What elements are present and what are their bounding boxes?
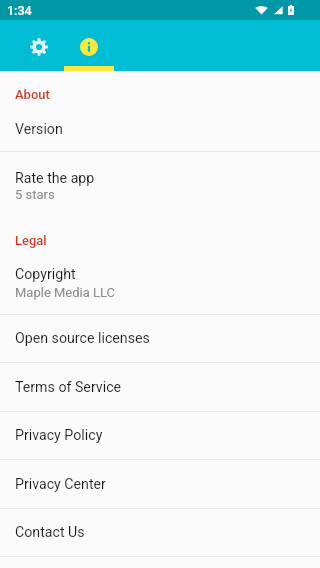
button[interactable]: Info: [64, 20, 114, 71]
button[interactable]: Open source licenses: [0, 315, 320, 362]
button[interactable]: Privacy Center: [0, 460, 320, 508]
staticText: Version: [15, 121, 63, 138]
button[interactable]: Terms of Service: [0, 363, 320, 411]
button[interactable]: Privacy Policy: [0, 412, 320, 459]
staticText: About: [15, 87, 50, 102]
button[interactable]: Copyright: [0, 245, 320, 314]
button[interactable]: Settings: [14, 20, 64, 71]
staticText: Copyright: [15, 266, 76, 283]
button[interactable]: Rate the app: [0, 152, 320, 215]
staticText: Terms of Service: [15, 379, 122, 396]
button[interactable]: Contact Us: [0, 509, 320, 556]
staticText: 5 stars: [15, 187, 55, 202]
staticText: Legal: [15, 233, 47, 248]
staticText: 1:34: [7, 3, 32, 18]
staticText: Contact Us: [15, 524, 85, 541]
button[interactable]: Version: [0, 101, 320, 151]
staticText: Privacy Center: [15, 476, 106, 493]
staticText: Rate the app: [15, 170, 95, 187]
staticText: Maple Media LLC: [15, 285, 116, 300]
staticText: Open source licenses: [15, 330, 150, 347]
staticText: Privacy Policy: [15, 427, 103, 444]
